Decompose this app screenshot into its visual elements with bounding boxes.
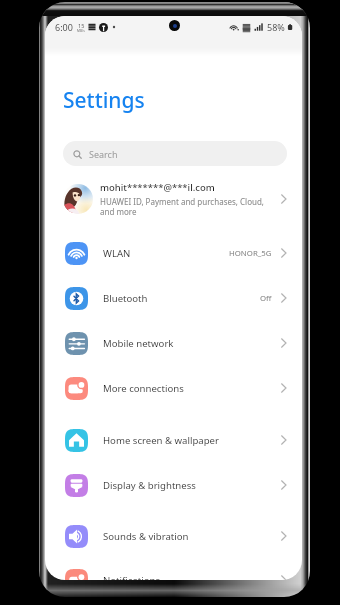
- button[interactable]: WLAN: [45, 240, 302, 266]
- button[interactable]: mohit*******@***il.com: [45, 180, 302, 218]
- staticText: 58%: [267, 21, 285, 33]
- staticText: WLAN: [103, 247, 131, 260]
- button[interactable]: Notifications: [45, 567, 302, 580]
- button[interactable]: Home screen & wallpaper: [45, 427, 302, 453]
- staticText: 6:00: [55, 21, 73, 33]
- button[interactable]: Sounds & vibration: [45, 523, 302, 549]
- button[interactable]: Display & brightness: [45, 472, 302, 498]
- button[interactable]: Search: [63, 141, 287, 166]
- staticText: Display & brightness: [103, 479, 196, 492]
- staticText: Home screen & wallpaper: [103, 434, 219, 447]
- button[interactable]: Mobile network: [45, 330, 302, 356]
- staticText: Settings: [63, 86, 145, 115]
- button[interactable]: More connections: [45, 375, 302, 401]
- staticText: Notifications: [103, 574, 161, 580]
- staticText: HUAWEI ID, Payment and purchases, Cloud,…: [100, 196, 265, 217]
- staticText: MB/s: [77, 29, 85, 33]
- staticText: Off: [260, 293, 272, 304]
- staticText: More connections: [103, 382, 184, 395]
- staticText: Sounds & vibration: [103, 530, 189, 543]
- button[interactable]: Bluetooth: [45, 285, 302, 311]
- staticText: mohit*******@***il.com: [100, 181, 215, 194]
- staticText: Mobile network: [103, 337, 174, 350]
- staticText: 15: [78, 22, 85, 29]
- staticText: Search: [89, 148, 118, 160]
- staticText: Bluetooth: [103, 292, 148, 305]
- staticText: HONOR_5G: [229, 248, 272, 259]
